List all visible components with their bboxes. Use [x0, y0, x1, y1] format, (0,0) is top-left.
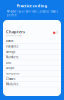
- staticText: Modules: [6, 82, 18, 86]
- staticText: Classes: [6, 77, 15, 81]
- staticText: Lists: [6, 61, 11, 64]
- staticText: Basics: [6, 39, 13, 43]
- button[interactable]: Numbers: [3, 55, 61, 60]
- staticText: Chapters: [6, 29, 25, 34]
- staticText: Pick up where you left off: [6, 35, 22, 37]
- button[interactable]: Basics: [3, 39, 61, 44]
- staticText: Loops: [6, 66, 14, 70]
- staticText: Functions: [6, 72, 19, 75]
- button[interactable]: Loops: [3, 66, 61, 71]
- staticText: Variables: [6, 45, 18, 48]
- button[interactable]: Classes: [3, 76, 61, 82]
- button[interactable]: Lists: [3, 60, 61, 66]
- button[interactable]: Variables: [3, 44, 61, 49]
- button[interactable]: Functions: [3, 71, 61, 76]
- staticText: 3: [56, 31, 58, 34]
- staticText: Strings: [6, 50, 15, 54]
- button[interactable]: Strings: [3, 49, 61, 55]
- staticText: Whatever your skill level, practice make…: [6, 10, 57, 17]
- button[interactable]: Streak: [53, 31, 58, 34]
- button[interactable]: Modules: [3, 82, 61, 87]
- staticText: Practice coding: [16, 3, 47, 8]
- staticText: Numbers: [6, 55, 18, 59]
